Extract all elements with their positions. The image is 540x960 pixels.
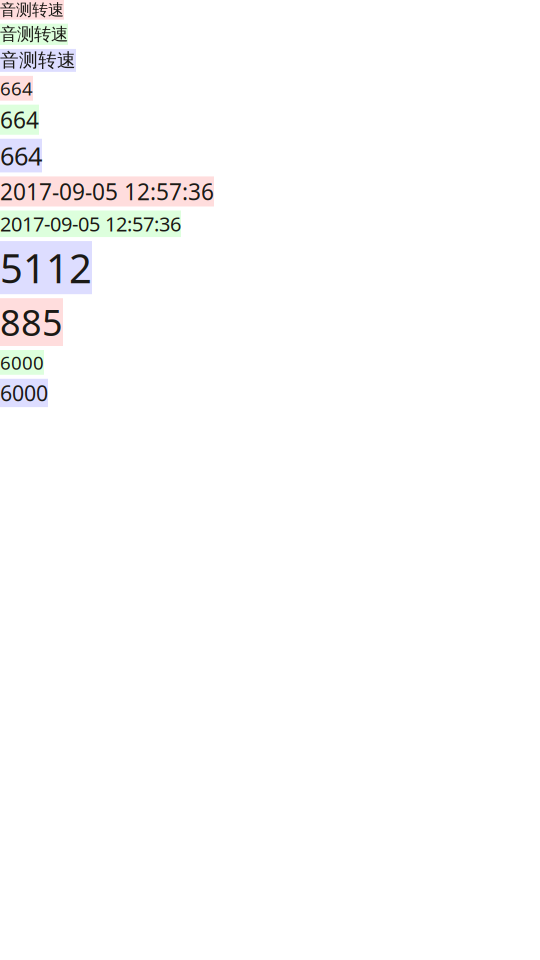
staticText: 5112	[0, 241, 92, 294]
staticText: 664	[0, 139, 42, 172]
staticText: 音测转速	[0, 24, 68, 45]
staticText: 6000	[0, 379, 48, 407]
staticText: 音测转速	[0, 49, 76, 72]
staticText: 2017-09-05 12:57:36	[0, 210, 181, 237]
staticText: 2017-09-05 12:57:36	[0, 176, 214, 206]
staticText: 6000	[0, 350, 44, 375]
staticText: 音测转速	[0, 0, 64, 20]
staticText: 664	[0, 76, 33, 101]
staticText: 885	[0, 298, 63, 346]
staticText: 664	[0, 105, 39, 135]
